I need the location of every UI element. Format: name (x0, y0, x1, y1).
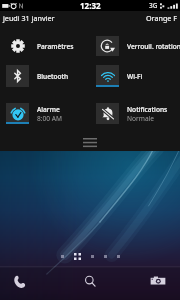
button[interactable]: Paramètres (0, 36, 90, 56)
staticText: Paramètres (37, 42, 74, 51)
staticText: 12:32 (80, 0, 101, 11)
staticText: Verrouil. rotation (127, 42, 180, 51)
button[interactable]: Bluetooth (0, 65, 90, 87)
staticText: Alarme (37, 105, 60, 114)
staticText: Notifications (127, 105, 168, 114)
button[interactable]: Search (75, 266, 105, 296)
staticText: Orange F (146, 13, 177, 23)
staticText: Bluetooth (37, 72, 69, 81)
button[interactable]: Notifications (90, 103, 180, 124)
staticText: 8:00 AM (37, 114, 62, 123)
button[interactable]: Verrouil. rotation (90, 36, 180, 56)
button[interactable]: Collapse panel (0, 124, 180, 151)
staticText: Wi-Fi (127, 72, 143, 81)
staticText: Normale (127, 114, 155, 123)
button[interactable]: Camera (143, 266, 173, 296)
staticText: 3G (149, 1, 158, 10)
staticText: jeudi 31 janvier (3, 13, 55, 23)
button[interactable]: Apps (74, 253, 81, 260)
button[interactable]: Phone (4, 266, 34, 296)
button[interactable]: Alarme (0, 103, 90, 124)
button[interactable]: Wi-Fi (90, 65, 180, 87)
